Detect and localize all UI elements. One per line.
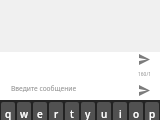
staticText: r <box>54 107 59 120</box>
button[interactable]: w <box>17 102 31 120</box>
staticText: p <box>149 107 156 120</box>
staticText: q <box>5 107 12 120</box>
staticText: i <box>119 107 122 120</box>
button[interactable]: i <box>113 102 127 120</box>
button[interactable]: u <box>97 102 111 120</box>
staticText: y <box>85 107 91 120</box>
button[interactable]: e <box>33 102 47 120</box>
button[interactable]: Send message <box>133 48 156 71</box>
staticText: u <box>101 107 108 120</box>
button[interactable]: y <box>81 102 95 120</box>
staticText: Введите сообщение <box>11 84 77 93</box>
button[interactable]: r <box>49 102 63 120</box>
staticText: e <box>37 107 43 120</box>
staticText: 160/1 <box>138 71 152 78</box>
button[interactable]: Send message <box>133 79 156 102</box>
button[interactable]: t <box>65 102 79 120</box>
staticText: o <box>133 107 140 120</box>
staticText: w <box>20 107 29 120</box>
button[interactable]: p <box>145 102 159 120</box>
button[interactable]: o <box>129 102 143 120</box>
button[interactable]: q <box>1 102 15 120</box>
staticText: t <box>70 107 74 120</box>
button[interactable] <box>0 52 160 100</box>
